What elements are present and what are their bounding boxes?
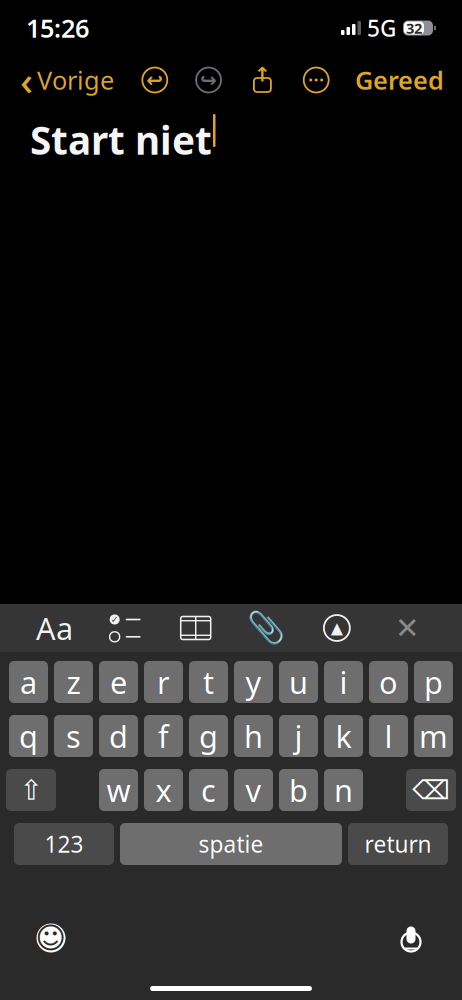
button[interactable]: h [234,715,273,757]
staticText: p [424,662,443,702]
staticText: ▲ [331,619,343,637]
staticText: 15:26 [26,11,89,45]
staticText: a [20,662,37,702]
staticText: 123 [44,829,83,859]
button[interactable]: w [99,769,138,811]
button[interactable]: n [324,769,363,811]
staticText: x [155,770,171,810]
staticText: j [294,716,302,756]
button[interactable]: return [348,823,448,865]
button[interactable]: e [99,661,138,703]
staticText: Gereed [355,63,444,97]
staticText: r [157,662,170,702]
staticText: b [289,770,308,810]
button[interactable]: Shift [6,769,56,811]
button[interactable]: spatie [120,823,342,865]
button[interactable]: Verwijderen [406,769,456,811]
staticText: return [364,829,431,859]
button[interactable]: Delen [241,58,283,102]
button[interactable]: t [189,661,228,703]
button[interactable]: a [9,661,48,703]
staticText: h [244,716,263,756]
button[interactable]: q [9,715,48,757]
staticText: c [201,770,216,810]
staticText: u [289,662,308,702]
staticText: z [66,662,80,702]
button[interactable]: Sluiten [385,605,429,651]
button[interactable]: j [279,715,318,757]
button[interactable]: u [279,661,318,703]
button[interactable]: Checklist [103,605,147,651]
staticText: ‹ [20,53,33,106]
button[interactable]: l [369,715,408,757]
staticText: ↩ [146,69,163,91]
staticText: spatie [198,829,263,859]
button[interactable]: Dicteren [388,917,434,959]
staticText: i [339,662,347,702]
staticText: e [110,662,127,702]
button[interactable]: g [189,715,228,757]
button[interactable]: y [234,661,273,703]
button[interactable]: Tabel [174,605,218,651]
button[interactable]: 123 [14,823,114,865]
staticText: ✓ [111,614,119,625]
staticText: q [19,716,38,756]
staticText: 📎 [247,610,285,645]
button[interactable]: ‹ [12,58,122,102]
button[interactable]: i [324,661,363,703]
staticText: 32 [406,18,422,38]
staticText: l [384,716,392,756]
staticText: f [158,716,169,756]
staticText: s [66,716,81,756]
button[interactable]: r [144,661,183,703]
button[interactable]: z [54,661,93,703]
staticText: t [203,662,214,702]
staticText: o [379,662,398,702]
staticText: Vorige [37,63,114,97]
staticText: n [334,770,353,810]
button[interactable]: c [189,769,228,811]
staticText: ☺ [35,921,66,955]
staticText: d [109,716,128,756]
button[interactable]: p [414,661,453,703]
button[interactable]: m [414,715,453,757]
staticText: ↪ [200,69,217,91]
button[interactable]: x [144,769,183,811]
staticText: ⇧ [19,774,42,806]
button[interactable]: b [279,769,318,811]
button[interactable]: Ongedaan maken [134,58,176,102]
staticText: 5G [367,13,396,43]
button[interactable]: f [144,715,183,757]
staticText: ✕ [395,611,420,645]
staticText: g [199,716,218,756]
button[interactable]: Meer [295,58,337,102]
button[interactable]: Emoji [28,917,74,959]
button[interactable]: Opnieuw [188,58,230,102]
staticText: Aa [36,608,73,648]
staticText: w [106,770,130,810]
button[interactable]: Markeringen [315,605,359,651]
staticText: ↑ [254,63,271,86]
button[interactable]: Opmaak [33,605,77,651]
button[interactable]: v [234,769,273,811]
staticText: Start niet [30,114,212,165]
staticText: v [245,770,261,810]
button[interactable]: d [99,715,138,757]
button[interactable]: Gereed [349,58,450,102]
button[interactable]: o [369,661,408,703]
staticText: k [335,716,351,756]
staticText: ⌫ [412,775,450,805]
staticText: y [245,662,261,702]
button[interactable]: s [54,715,93,757]
button[interactable]: k [324,715,363,757]
staticText: m [419,716,448,756]
button[interactable]: Bijlage [244,605,288,651]
